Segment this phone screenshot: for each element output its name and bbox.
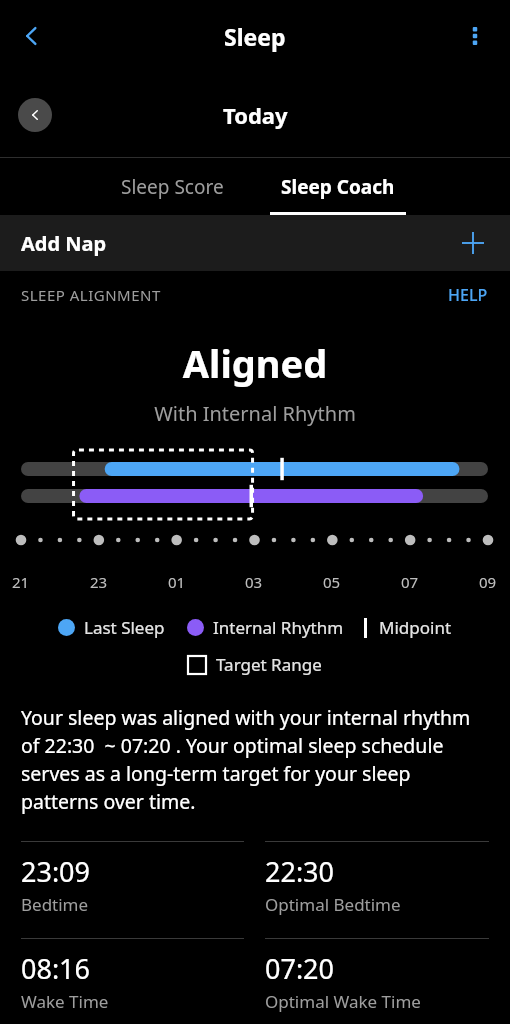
staticText: 23:09 bbox=[21, 853, 91, 890]
staticText: 22:30 bbox=[265, 853, 335, 890]
staticText: Sleep Score bbox=[121, 174, 224, 200]
button[interactable]: Add Nap bbox=[0, 215, 510, 271]
staticText: 21 bbox=[12, 572, 30, 592]
staticText: 07 bbox=[401, 572, 419, 592]
staticText: HELP bbox=[448, 284, 488, 306]
button[interactable]: HELP bbox=[444, 278, 492, 312]
staticText: Sleep Coach bbox=[281, 174, 395, 200]
staticText: Last Sleep bbox=[84, 616, 165, 639]
staticText: 01 bbox=[168, 572, 186, 592]
button[interactable]: Previous day bbox=[18, 98, 52, 132]
staticText: 03 bbox=[245, 572, 263, 592]
button[interactable]: 07:20 bbox=[265, 938, 489, 1013]
staticText: Sleep bbox=[224, 21, 286, 52]
staticText: 23 bbox=[90, 572, 108, 592]
staticText: Wake Time bbox=[21, 990, 109, 1013]
staticText: 07:20 bbox=[265, 950, 335, 987]
staticText: Target Range bbox=[216, 653, 322, 676]
staticText: Today bbox=[223, 100, 288, 130]
staticText: Optimal Wake Time bbox=[265, 990, 421, 1013]
staticText: SLEEP ALIGNMENT bbox=[21, 285, 161, 305]
button[interactable]: More options bbox=[453, 14, 497, 58]
staticText: Add Nap bbox=[21, 230, 107, 257]
staticText: Your sleep was aligned with your interna… bbox=[21, 704, 490, 815]
staticText: Aligned bbox=[0, 337, 510, 389]
staticText: 05 bbox=[323, 572, 341, 592]
staticText: Internal Rhythm bbox=[213, 616, 344, 639]
button[interactable]: Back bbox=[8, 12, 56, 60]
button[interactable]: 08:16 bbox=[21, 938, 244, 1013]
button[interactable]: Sleep Score bbox=[90, 158, 255, 215]
button[interactable]: Sleep Coach bbox=[255, 158, 420, 215]
staticText: Optimal Bedtime bbox=[265, 893, 401, 916]
staticText: 09 bbox=[479, 572, 497, 592]
staticText: 08:16 bbox=[21, 950, 91, 987]
staticText: With Internal Rhythm bbox=[0, 400, 510, 427]
staticText: Bedtime bbox=[21, 893, 89, 916]
staticText: Midpoint bbox=[379, 616, 452, 639]
button[interactable]: 22:30 bbox=[265, 841, 489, 916]
button[interactable]: 23:09 bbox=[21, 841, 244, 916]
